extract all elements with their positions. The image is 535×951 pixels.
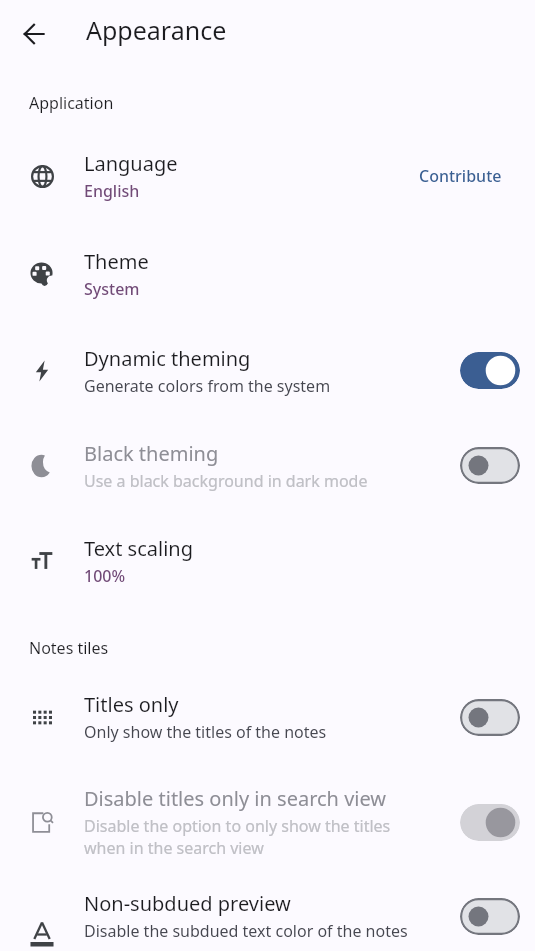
button[interactable]: Black theming: [0, 418, 535, 513]
staticText: 100%: [84, 565, 126, 587]
staticText: Disable the subdued text color of the no…: [84, 920, 408, 942]
button[interactable]: Back: [10, 10, 58, 58]
button[interactable]: Text scaling: [0, 513, 535, 608]
staticText: Appearance: [86, 13, 227, 47]
button[interactable]: Contribute: [413, 159, 508, 193]
button[interactable]: Dynamic theming: [0, 323, 535, 418]
button[interactable]: Switch off: [460, 699, 520, 736]
staticText: Disable titles only in search view: [84, 785, 387, 812]
staticText: Titles only: [84, 691, 179, 718]
button[interactable]: Non-subdued preview: [0, 881, 535, 951]
button[interactable]: Disable titles only in search view: [0, 763, 535, 881]
button[interactable]: Switch off: [460, 898, 520, 935]
button[interactable]: Switch on: [460, 352, 520, 389]
staticText: Notes tiles: [29, 637, 109, 659]
staticText: Language: [84, 150, 178, 177]
button[interactable]: Switch off: [460, 447, 520, 484]
button[interactable]: Theme: [0, 225, 535, 323]
staticText: Generate colors from the system: [84, 375, 331, 397]
staticText: Dynamic theming: [84, 345, 251, 372]
staticText: Contribute: [419, 165, 502, 187]
button[interactable]: Titles only: [0, 671, 535, 763]
staticText: Use a black background in dark mode: [84, 470, 368, 492]
staticText: Application: [29, 92, 114, 114]
staticText: Text scaling: [84, 535, 193, 562]
staticText: System: [84, 278, 140, 300]
staticText: Theme: [84, 248, 149, 275]
staticText: Black theming: [84, 440, 219, 467]
button[interactable]: Language: [0, 126, 535, 225]
staticText: Non-subdued preview: [84, 890, 291, 917]
button[interactable]: Switch on: [460, 804, 520, 841]
staticText: English: [84, 180, 140, 202]
staticText: Disable the option to only show the titl…: [84, 815, 410, 859]
staticText: Only show the titles of the notes: [84, 721, 327, 743]
